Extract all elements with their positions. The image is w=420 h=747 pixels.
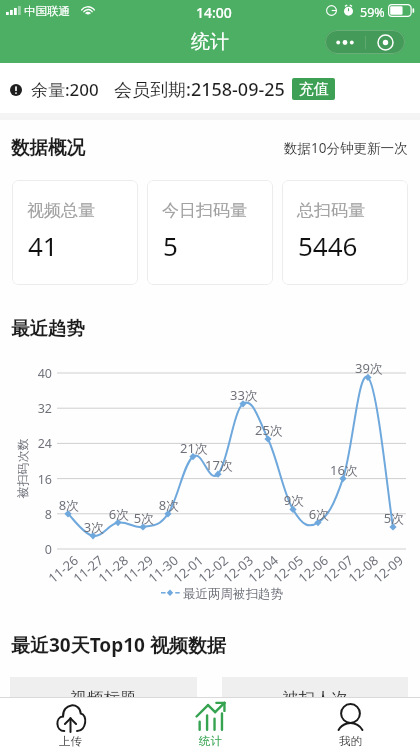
staticText: 3次 xyxy=(77,518,111,536)
staticText: 33次 xyxy=(227,386,261,404)
staticText: 我的 xyxy=(339,734,362,747)
staticText: 5 xyxy=(163,228,178,263)
staticText: 被扫人次 xyxy=(222,688,408,709)
staticText: 今日扫码量 xyxy=(162,200,247,221)
staticText: 12-02 xyxy=(194,551,232,587)
staticText: 59% xyxy=(360,4,385,21)
staticText: 41 xyxy=(28,228,58,263)
staticText: 16 xyxy=(22,471,52,488)
staticText: 9次 xyxy=(277,491,311,509)
button[interactable]: 总扫码量 xyxy=(282,180,408,285)
staticText: 12-03 xyxy=(219,551,257,587)
staticText: 12-04 xyxy=(244,551,282,587)
staticText: 被扫码次数 xyxy=(14,438,29,498)
staticText: 12-01 xyxy=(169,551,207,587)
staticText: 12-07 xyxy=(319,551,357,587)
button[interactable]: 今日扫码量 xyxy=(147,180,273,285)
staticText: 11-30 xyxy=(144,551,182,587)
staticText: 8次 xyxy=(152,496,186,514)
staticText: 视频标题 xyxy=(10,688,197,709)
button[interactable]: Close xyxy=(366,30,405,54)
staticText: 数据概况 xyxy=(11,136,85,159)
staticText: 40 xyxy=(22,365,52,382)
staticText: 会员到期:2158-09-25 xyxy=(114,77,285,102)
staticText: 25次 xyxy=(252,421,286,439)
button[interactable]: 上传 xyxy=(10,698,130,747)
staticText: 21次 xyxy=(177,439,211,457)
staticText: 最近两周被扫趋势 xyxy=(183,586,283,602)
button[interactable]: 充值 xyxy=(292,78,335,100)
staticText: 11-27 xyxy=(69,551,107,587)
staticText: 最近趋势 xyxy=(11,317,85,340)
staticText: 12-09 xyxy=(369,551,407,587)
staticText: 24 xyxy=(22,435,52,452)
staticText: 14:00 xyxy=(196,3,232,22)
staticText: 16次 xyxy=(327,461,361,479)
staticText: 上传 xyxy=(59,734,82,747)
staticText: 11-29 xyxy=(119,551,157,587)
button[interactable]: 视频总量 xyxy=(12,180,138,285)
staticText: 最近30天Top10 视频数据 xyxy=(11,632,226,658)
staticText: 8 xyxy=(22,506,52,523)
staticText: 12-05 xyxy=(269,551,307,587)
staticText: 32 xyxy=(22,400,52,417)
staticText: 5次 xyxy=(377,509,411,527)
staticText: 视频总量 xyxy=(27,200,95,221)
staticText: 12-08 xyxy=(344,551,382,587)
staticText: 0 xyxy=(22,541,52,558)
staticText: 12-06 xyxy=(294,551,332,587)
staticText: 11-28 xyxy=(94,551,132,587)
staticText: 中国联通 xyxy=(24,4,70,18)
staticText: 8次 xyxy=(52,496,86,514)
staticText: 11-26 xyxy=(44,551,82,587)
staticText: 17次 xyxy=(202,456,236,474)
staticText: 6次 xyxy=(102,505,136,523)
staticText: 余量:200 xyxy=(31,78,99,101)
staticText: 5次 xyxy=(127,509,161,527)
staticText: 总扫码量 xyxy=(297,200,365,221)
staticText: 数据10分钟更新一次 xyxy=(284,139,408,157)
staticText: 充值 xyxy=(299,80,329,99)
staticText: 39次 xyxy=(352,359,386,377)
button[interactable]: 统计 xyxy=(150,698,270,747)
button[interactable]: More options xyxy=(325,30,365,54)
button[interactable]: 我的 xyxy=(290,698,410,747)
staticText: 统计 xyxy=(191,30,229,54)
staticText: 6次 xyxy=(302,505,336,523)
staticText: 统计 xyxy=(199,734,222,747)
staticText: 5446 xyxy=(298,228,358,263)
